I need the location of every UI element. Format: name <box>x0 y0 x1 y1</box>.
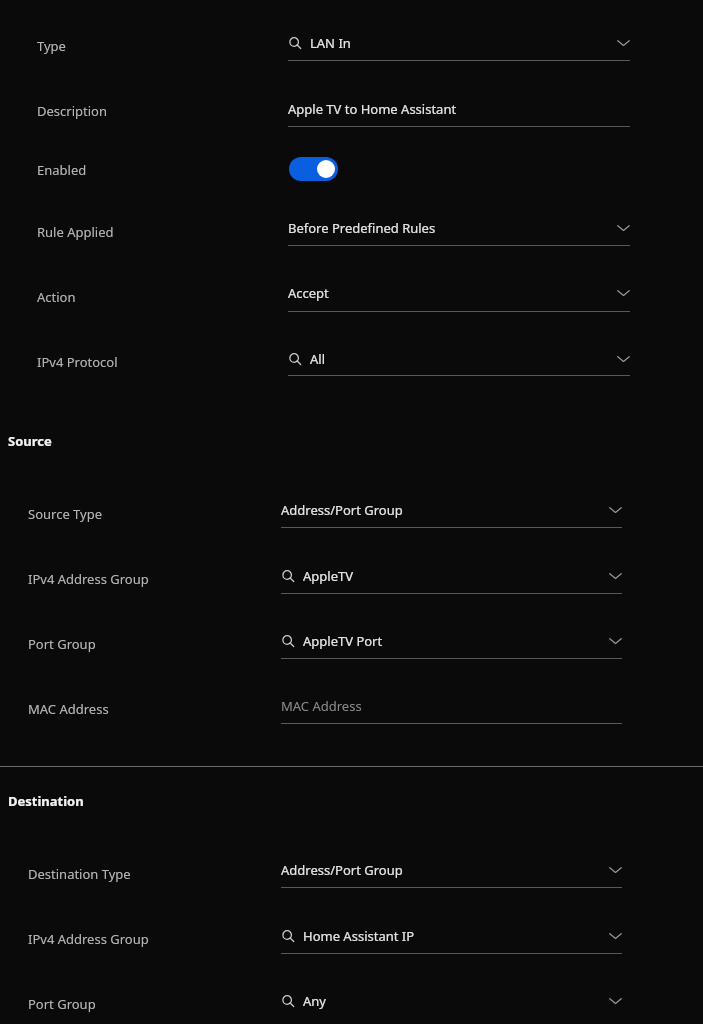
button[interactable]: Address/Port Group <box>281 496 622 524</box>
staticText: Any <box>303 992 326 1010</box>
button[interactable]: Any <box>281 987 622 1015</box>
staticText: Source <box>8 432 52 450</box>
staticText: Action <box>37 288 76 306</box>
button[interactable]: AppleTV Port <box>281 627 622 655</box>
staticText: MAC Address <box>281 697 362 715</box>
staticText: Type <box>37 37 66 55</box>
staticText: IPv4 Address Group <box>28 930 149 948</box>
button[interactable]: All <box>288 345 630 373</box>
staticText: LAN In <box>310 34 351 52</box>
button[interactable]: Before Predefined Rules <box>288 214 630 242</box>
staticText: Address/Port Group <box>281 861 403 879</box>
button[interactable]: Address/Port Group <box>281 856 622 884</box>
staticText: IPv4 Protocol <box>37 353 118 371</box>
button[interactable]: Enabled <box>289 157 338 181</box>
button[interactable]: AppleTV <box>281 562 622 590</box>
staticText: Accept <box>288 284 329 302</box>
staticText: IPv4 Address Group <box>28 570 149 588</box>
staticText: Rule Applied <box>37 223 114 241</box>
staticText: Description <box>37 102 107 120</box>
staticText: MAC Address <box>28 700 109 718</box>
staticText: Destination <box>8 792 84 810</box>
staticText: Address/Port Group <box>281 501 403 519</box>
button[interactable]: LAN In <box>288 29 630 57</box>
button[interactable]: Home Assistant IP <box>281 922 622 950</box>
staticText: Apple TV to Home Assistant <box>288 100 457 118</box>
staticText: Port Group <box>28 635 96 653</box>
staticText: All <box>310 350 326 368</box>
staticText: Port Group <box>28 995 96 1013</box>
staticText: Enabled <box>37 161 87 179</box>
staticText: AppleTV <box>303 567 354 585</box>
button[interactable]: MAC Address <box>281 692 622 720</box>
button[interactable]: Apple TV to Home Assistant <box>288 95 630 123</box>
staticText: Before Predefined Rules <box>288 219 436 237</box>
staticText: Home Assistant IP <box>303 927 415 945</box>
staticText: Source Type <box>28 505 103 523</box>
staticText: Destination Type <box>28 865 131 883</box>
staticText: AppleTV Port <box>303 632 383 650</box>
button[interactable]: Accept <box>288 279 630 307</box>
